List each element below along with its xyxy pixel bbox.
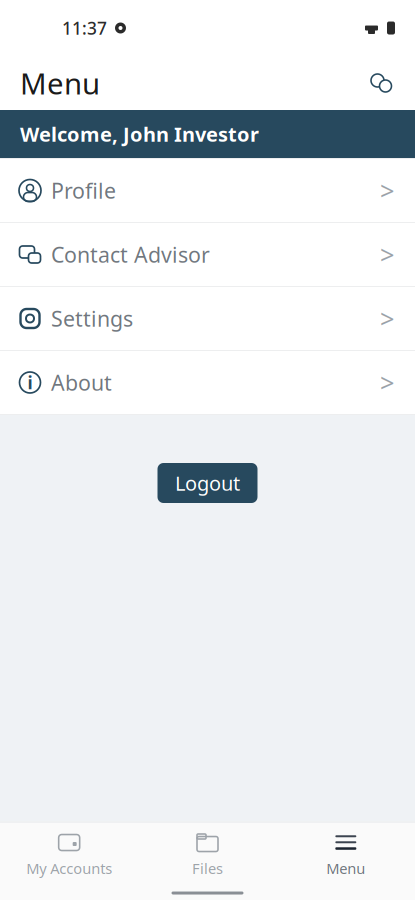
button[interactable]: Settings [0, 287, 415, 351]
button[interactable]: Contact Advisor [0, 223, 415, 287]
staticText: Files [192, 858, 223, 878]
staticText: About [51, 368, 112, 397]
staticText: > [380, 174, 394, 207]
staticText: Profile [51, 176, 116, 205]
button[interactable]: Files [138, 822, 277, 886]
button[interactable]: My Accounts [0, 822, 138, 886]
staticText: Logout [175, 470, 240, 496]
staticText: Settings [51, 304, 133, 333]
button[interactable]: Messages [361, 63, 401, 103]
staticText: Menu [326, 858, 365, 878]
button[interactable]: Logout [157, 463, 257, 503]
staticText: Menu [20, 63, 100, 102]
staticText: 11:37 [62, 16, 107, 39]
button[interactable]: i [0, 351, 415, 415]
staticText: > [380, 238, 394, 271]
staticText: > [380, 302, 394, 335]
staticText: i [27, 371, 32, 394]
staticText: > [380, 366, 394, 399]
staticText: Welcome, John Investor [20, 121, 259, 147]
staticText: Contact Advisor [51, 240, 210, 269]
button[interactable]: Profile [0, 159, 415, 223]
staticText: My Accounts [26, 858, 112, 878]
button[interactable]: Menu [277, 822, 415, 886]
